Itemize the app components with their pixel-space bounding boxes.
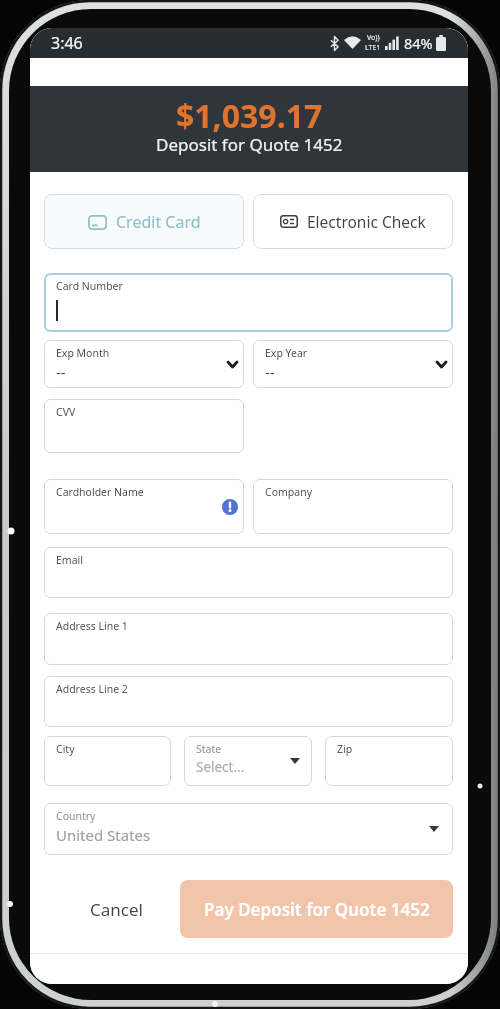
staticText: Card Number — [56, 279, 123, 293]
staticText: LTE1 — [365, 43, 381, 53]
staticText: United States — [56, 825, 151, 845]
button[interactable]: Exp Month — [44, 340, 244, 388]
button[interactable]: City — [44, 736, 171, 786]
staticText: Address Line 1 — [56, 619, 128, 633]
button[interactable]: Cardholder Name — [44, 479, 244, 534]
staticText: -- — [265, 362, 275, 382]
staticText: Exp Year — [265, 346, 308, 360]
staticText: City — [56, 742, 75, 756]
staticText: -- — [56, 362, 66, 382]
staticText: Select... — [196, 758, 245, 776]
button[interactable]: State — [184, 736, 312, 786]
staticText: $1,039.17 — [176, 94, 323, 138]
staticText: Cancel — [90, 898, 143, 921]
button[interactable]: Exp Year — [253, 340, 453, 388]
button[interactable]: Address Line 1 — [44, 613, 453, 665]
button[interactable]: Company — [253, 479, 453, 534]
button[interactable]: Electronic Check — [253, 194, 453, 249]
staticText: Electronic Check — [307, 211, 426, 232]
staticText: 3:46 — [51, 32, 83, 54]
staticText: Company — [265, 485, 312, 499]
button[interactable]: Email — [44, 547, 453, 598]
staticText: 84% — [404, 33, 433, 53]
button[interactable]: Zip — [325, 736, 453, 786]
button[interactable]: Cancel — [44, 880, 180, 938]
staticText: Cardholder Name — [56, 485, 144, 499]
staticText: Email — [56, 553, 83, 567]
staticText: State — [196, 742, 222, 756]
staticText: Zip — [337, 742, 353, 756]
button[interactable]: Address Line 2 — [44, 676, 453, 727]
staticText: Exp Month — [56, 346, 110, 360]
button[interactable]: Card Number — [44, 273, 453, 332]
staticText: Credit Card — [116, 211, 201, 233]
button[interactable]: Pay Deposit for Quote 1452 — [180, 880, 453, 938]
staticText: Pay Deposit for Quote 1452 — [204, 898, 430, 921]
staticText: Country — [56, 809, 96, 823]
staticText: Address Line 2 — [56, 682, 128, 696]
staticText: Vo)) — [367, 33, 380, 43]
staticText: CVV — [56, 405, 76, 419]
button[interactable]: Credit Card — [44, 194, 244, 249]
button[interactable]: Country — [44, 803, 453, 855]
button[interactable]: CVV — [44, 399, 244, 453]
staticText: Deposit for Quote 1452 — [156, 133, 343, 156]
